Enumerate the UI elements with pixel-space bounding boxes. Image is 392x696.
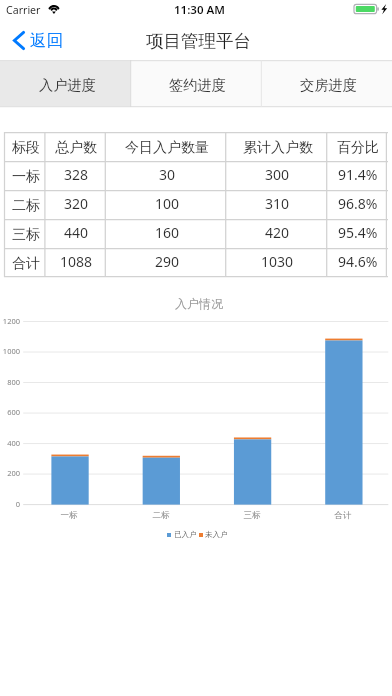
staticText: 1000	[0, 346, 20, 356]
staticText: 200	[0, 468, 20, 478]
button[interactable]: 入户进度	[0, 60, 130, 107]
staticText: 百分比	[337, 139, 379, 157]
staticText: 合计	[323, 510, 363, 521]
staticText: 入户情况	[175, 296, 223, 311]
staticText: 一标	[12, 168, 40, 186]
staticText: 未入户	[205, 530, 228, 539]
staticText: 100	[155, 194, 180, 213]
staticText: 一标	[49, 510, 89, 521]
button[interactable]: 返回	[0, 25, 74, 56]
staticText: 二标	[141, 510, 181, 521]
staticText: 总户数	[55, 139, 97, 157]
staticText: 91.4%	[338, 165, 378, 184]
staticText: 三标	[12, 226, 40, 244]
staticText: 返回	[30, 30, 64, 51]
staticText: 1088	[60, 252, 93, 271]
staticText: 已入户	[174, 530, 197, 539]
staticText: 二标	[12, 197, 40, 215]
staticText: 320	[64, 194, 89, 213]
staticText: 1200	[0, 316, 20, 326]
staticText: 交房进度	[300, 76, 357, 94]
staticText: 94.6%	[338, 252, 378, 271]
staticText: 160	[155, 223, 180, 242]
staticText: 合计	[12, 255, 40, 273]
staticText: Carrier	[6, 3, 41, 17]
staticText: 290	[155, 252, 180, 271]
staticText: 400	[0, 438, 20, 448]
staticText: 800	[0, 377, 20, 387]
staticText: 95.4%	[338, 223, 378, 242]
staticText: 420	[265, 223, 290, 242]
other: Battery charging	[354, 3, 390, 15]
staticText: 累计入户数	[243, 139, 313, 157]
button[interactable]: 签约进度	[130, 60, 261, 107]
staticText: 30	[159, 165, 176, 184]
staticText: 签约进度	[169, 76, 226, 94]
staticText: 96.8%	[338, 194, 378, 213]
staticText: 328	[64, 165, 89, 184]
button[interactable]: 交房进度	[261, 60, 392, 107]
staticText: 300	[265, 165, 290, 184]
staticText: 三标	[232, 510, 272, 521]
staticText: 项目管理平台	[146, 30, 251, 52]
staticText: 0	[0, 499, 20, 509]
staticText: 1030	[261, 252, 294, 271]
staticText: 600	[0, 407, 20, 417]
staticText: 入户进度	[39, 76, 96, 94]
staticText: 11:30 AM	[174, 2, 225, 18]
other: Wi-Fi	[47, 3, 61, 15]
staticText: 440	[64, 223, 89, 242]
staticText: 310	[265, 194, 290, 213]
staticText: 今日入户数量	[125, 139, 209, 157]
staticText: 标段	[12, 139, 40, 157]
